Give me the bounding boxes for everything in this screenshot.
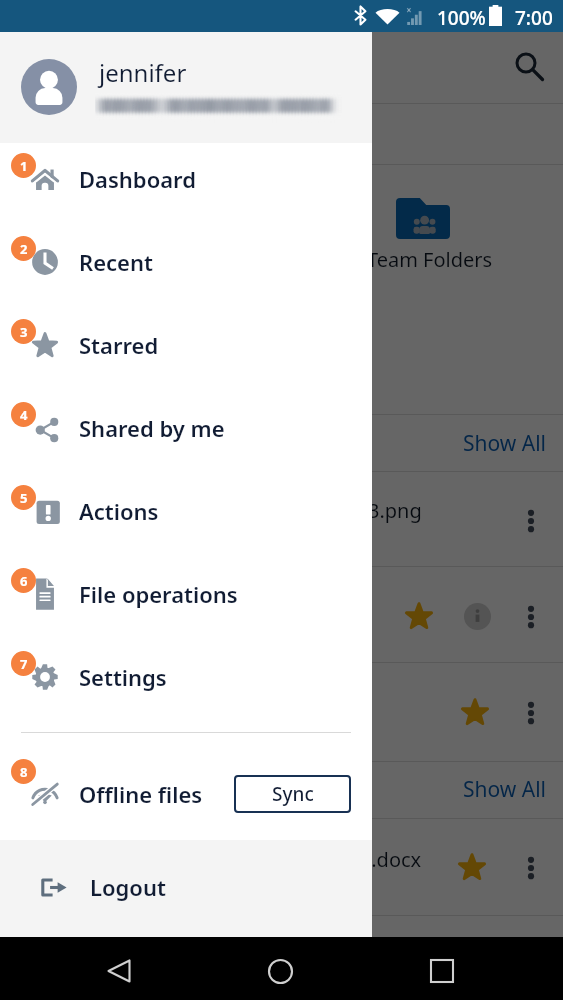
button[interactable]: Back	[95, 947, 143, 995]
staticText: File operations	[79, 579, 238, 609]
staticText: Settings	[79, 662, 167, 692]
staticText: Offline files	[79, 779, 203, 809]
button[interactable]: Show All	[443, 415, 563, 471]
button[interactable]: 8	[0, 752, 372, 835]
button[interactable]: 4	[0, 386, 372, 469]
staticText: 100%	[437, 5, 486, 31]
staticText: 3.png	[368, 497, 422, 524]
staticText: Recent	[79, 247, 153, 277]
staticText: 2	[20, 240, 28, 258]
staticText: Sync	[272, 781, 314, 807]
button[interactable]: 6	[0, 552, 372, 635]
staticText: Dashboard	[79, 164, 196, 194]
staticText: 3	[20, 323, 28, 341]
button[interactable]: Show All	[443, 761, 563, 817]
staticText: Shared by me	[79, 413, 225, 443]
button[interactable]: More options	[511, 689, 551, 737]
button[interactable]: 1	[0, 137, 372, 220]
staticText: 1	[20, 157, 28, 175]
staticText: 8	[20, 763, 28, 781]
button[interactable]: Info	[464, 603, 491, 630]
button[interactable]: Recents	[418, 947, 466, 995]
staticText: Show All	[463, 429, 547, 458]
button[interactable]: 5	[0, 469, 372, 552]
button[interactable]: Sync	[234, 775, 351, 813]
button[interactable]: More options	[511, 497, 551, 545]
staticText: Logout	[90, 872, 166, 902]
button[interactable]: 2	[0, 220, 372, 303]
staticText: 5	[20, 489, 28, 507]
staticText: 7	[20, 655, 28, 673]
staticText: 6	[20, 572, 28, 590]
button[interactable]: More options	[511, 844, 551, 892]
staticText: a.docx	[360, 846, 422, 873]
button[interactable]: 7	[0, 635, 372, 718]
staticText: Starred	[79, 330, 159, 360]
staticText: 4	[20, 406, 28, 424]
button[interactable]: More options	[511, 593, 551, 641]
button[interactable]: Home	[256, 947, 304, 995]
button[interactable]: Logout	[0, 840, 372, 937]
staticText: Actions	[79, 496, 159, 526]
staticText: jennifer	[99, 56, 187, 89]
staticText: 7:00	[515, 5, 553, 31]
staticText: Team Folders	[367, 246, 493, 273]
button[interactable]: Search	[509, 46, 549, 86]
button[interactable]: 3	[0, 303, 372, 386]
staticText: Show All	[463, 775, 547, 804]
